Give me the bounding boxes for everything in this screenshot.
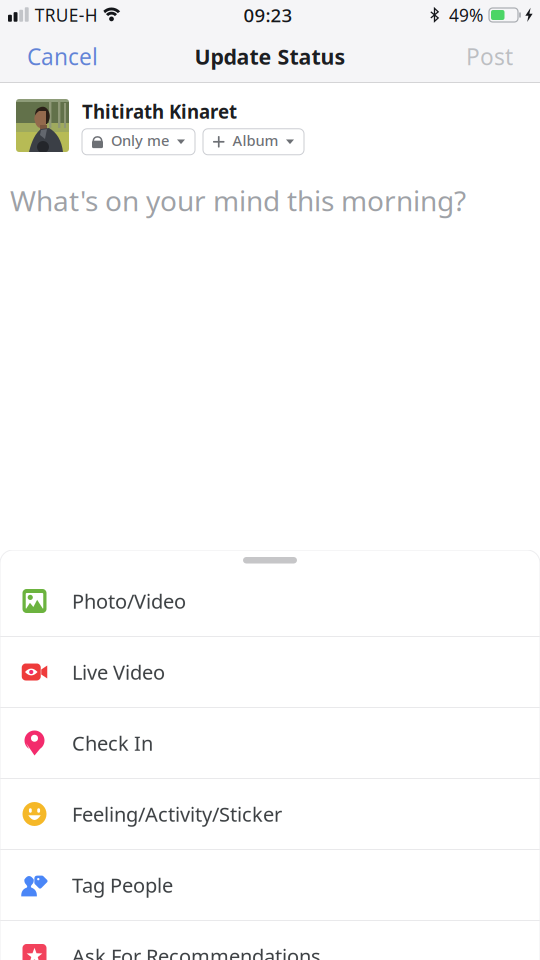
button[interactable]: Photo/Video (0, 566, 540, 636)
button[interactable]: Post (439, 30, 540, 83)
staticText: Cancel (27, 41, 98, 71)
button[interactable]: Tag People (0, 850, 540, 920)
staticText: Tag People (72, 872, 173, 898)
button[interactable]: Only me (82, 129, 195, 155)
button[interactable]: Live Video (0, 637, 540, 707)
staticText: TRUE-H (35, 3, 98, 26)
staticText: Album (232, 131, 278, 150)
staticText: 49% (449, 3, 483, 26)
staticText: Live Video (72, 659, 165, 685)
staticText: Post (466, 41, 513, 71)
staticText: 09:23 (244, 3, 293, 27)
button[interactable]: Ask For Recommendations (0, 921, 540, 960)
button[interactable]: Cancel (0, 30, 125, 83)
staticText: Thitirath Kinaret (82, 99, 237, 124)
button[interactable]: Check In (0, 708, 540, 778)
staticText: Feeling/Activity/Sticker (72, 801, 282, 827)
button[interactable]: Feeling/Activity/Sticker (0, 779, 540, 849)
staticText: What's on your mind this morning? (10, 182, 466, 219)
button[interactable]: Album (203, 129, 304, 155)
staticText: Photo/Video (72, 588, 186, 614)
staticText: Ask For Recommendations (72, 943, 321, 960)
staticText: Update Status (194, 42, 345, 71)
staticText: Only me (111, 131, 169, 150)
staticText: Check In (72, 730, 153, 756)
